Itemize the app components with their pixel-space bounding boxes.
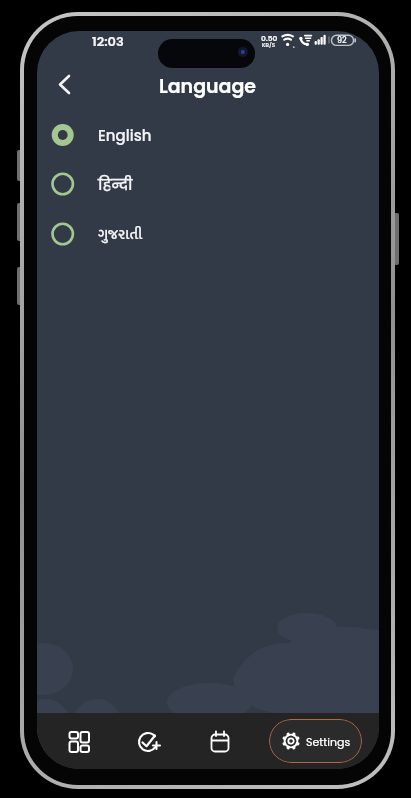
- button[interactable]: Settings: [269, 719, 362, 763]
- staticText: English: [98, 125, 152, 146]
- button[interactable]: English: [37, 110, 379, 160]
- staticText: ગુજરાતી: [98, 222, 143, 247]
- staticText: 12:03: [92, 32, 124, 50]
- staticText: 92: [337, 35, 347, 46]
- button[interactable]: [124, 718, 172, 766]
- button[interactable]: ગુજરાતી: [37, 209, 379, 259]
- staticText: हिन्दी: [98, 174, 133, 195]
- staticText: 0.50: [261, 33, 278, 43]
- button[interactable]: [196, 718, 244, 766]
- button[interactable]: [55, 718, 103, 766]
- button[interactable]: [47, 67, 85, 105]
- staticText: KB/S: [262, 41, 276, 48]
- button[interactable]: हिन्दी: [37, 159, 379, 209]
- staticText: Language: [159, 73, 257, 100]
- staticText: Settings: [306, 734, 351, 749]
